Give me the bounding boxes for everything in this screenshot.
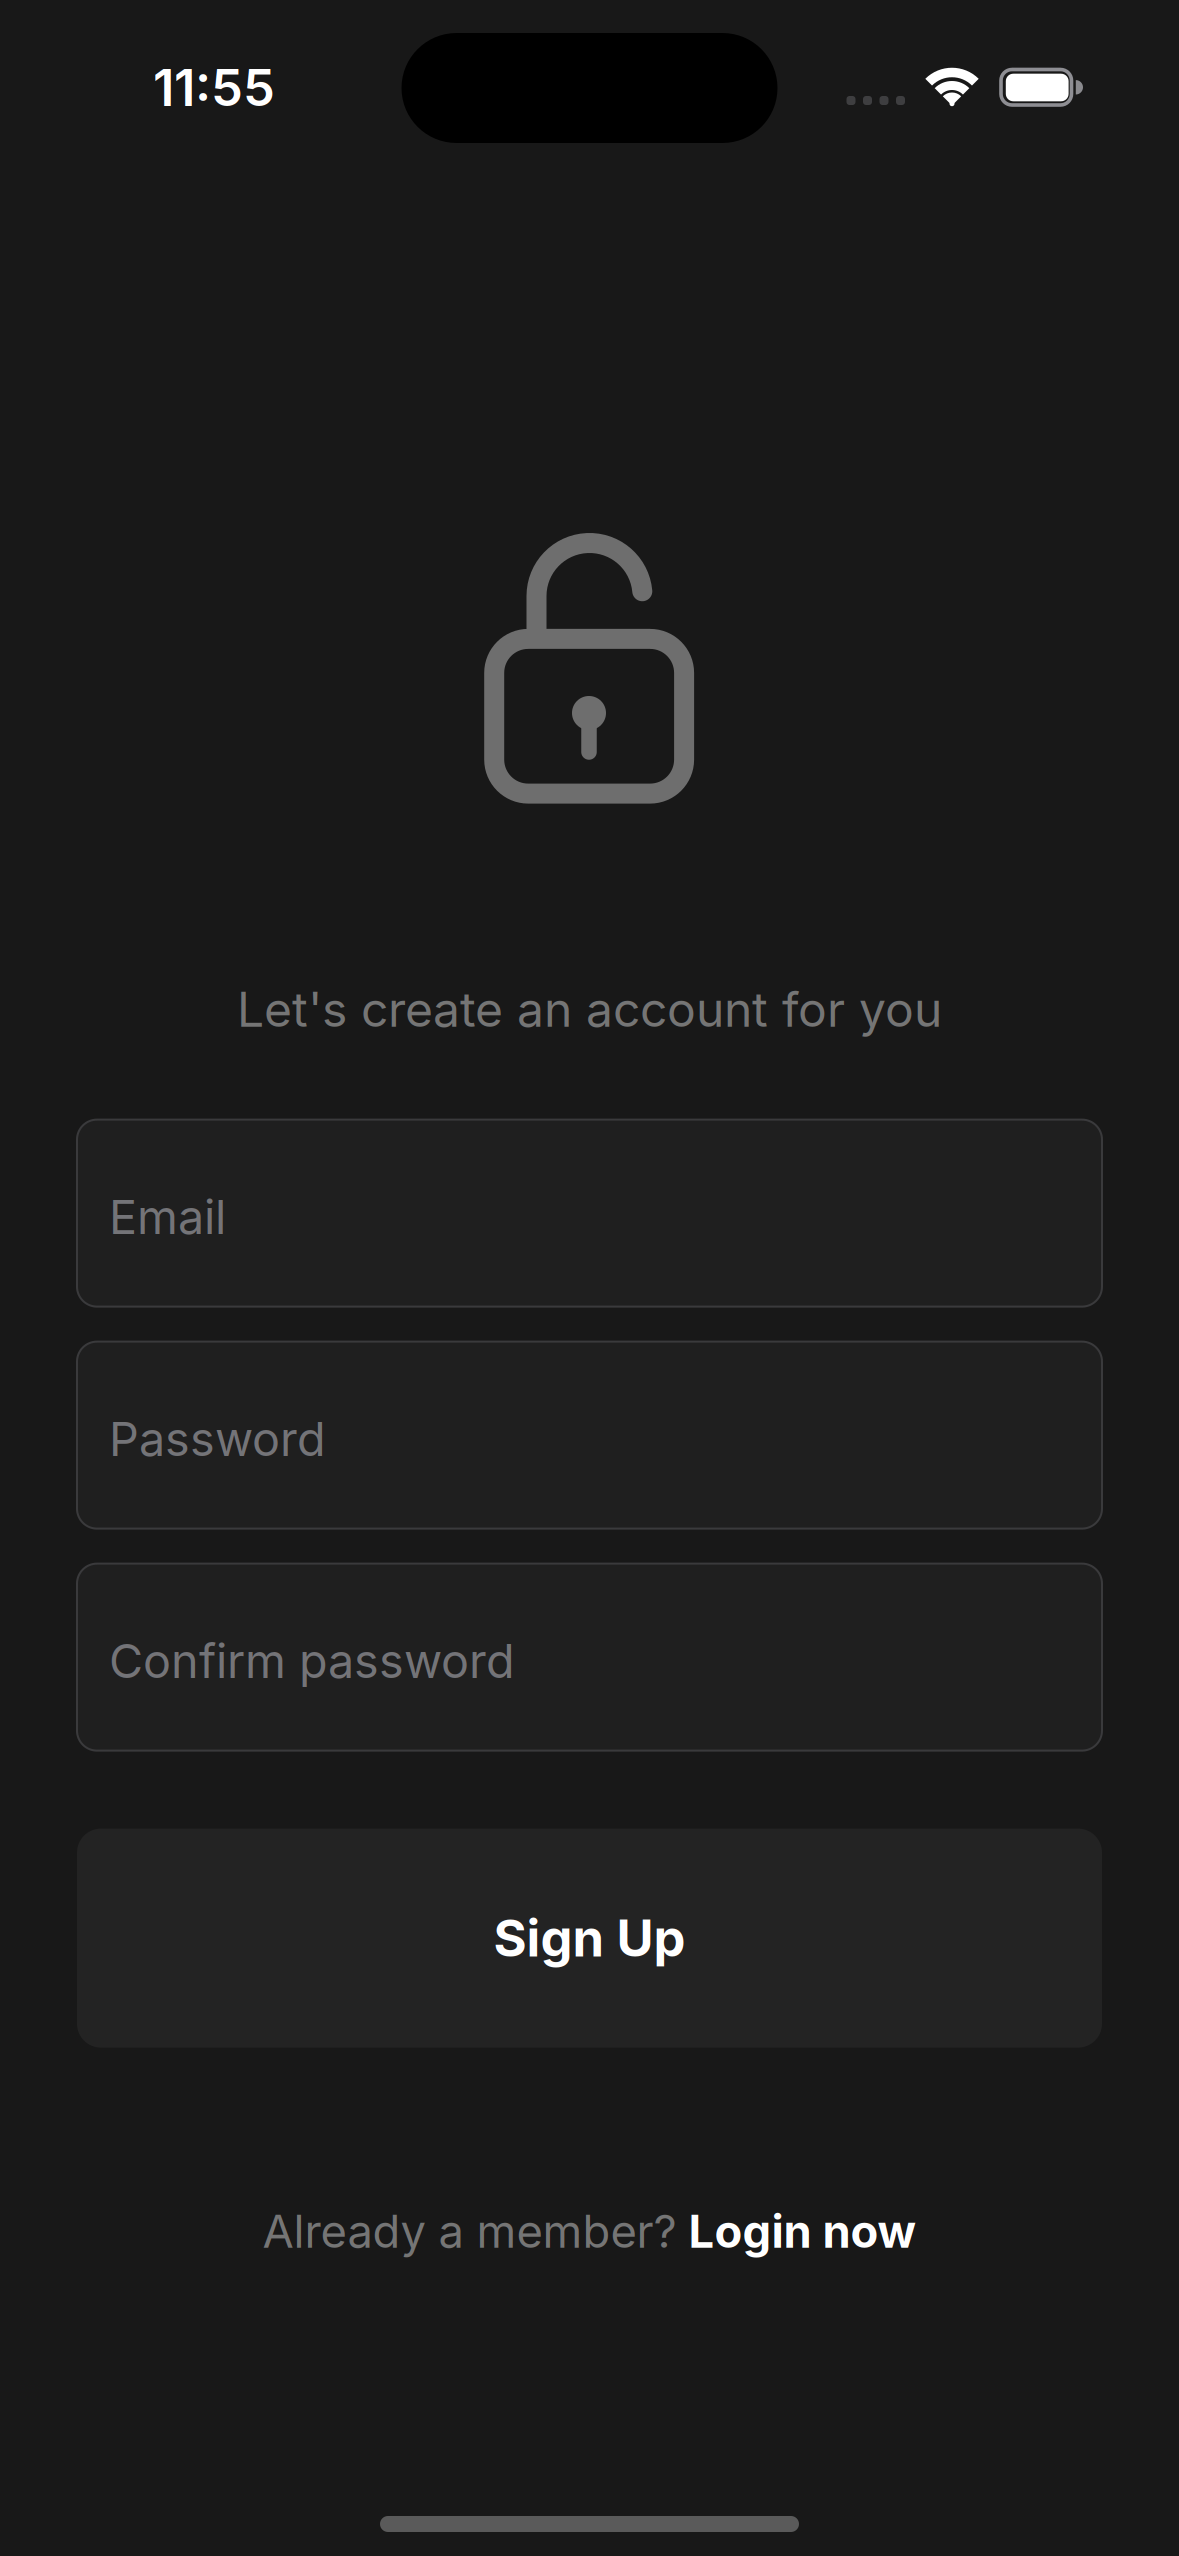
staticText: Sign Up bbox=[493, 1908, 685, 1968]
button[interactable]: Login now bbox=[688, 2205, 916, 2258]
button[interactable]: Sign Up bbox=[77, 1829, 1102, 2048]
staticText: Email bbox=[109, 1190, 226, 1245]
staticText: Confirm password bbox=[109, 1634, 515, 1689]
button[interactable]: Email bbox=[77, 1120, 1102, 1307]
button[interactable]: Confirm password bbox=[77, 1564, 1102, 1751]
staticText: Login now bbox=[688, 2205, 916, 2258]
staticText: 11:55 bbox=[153, 58, 275, 117]
staticText: Let's create an account for you bbox=[237, 981, 942, 1038]
staticText: Password bbox=[109, 1412, 326, 1467]
staticText: Already a member? bbox=[262, 2205, 676, 2258]
button[interactable]: Password bbox=[77, 1342, 1102, 1529]
